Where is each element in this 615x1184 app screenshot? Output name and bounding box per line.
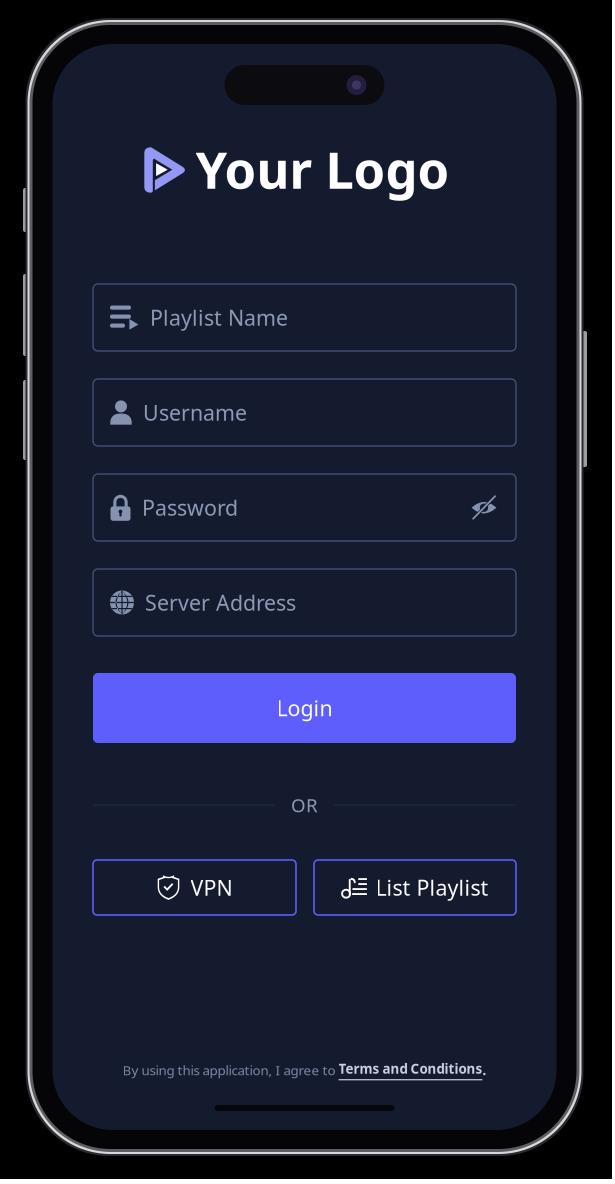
staticText: List Playlist	[375, 873, 488, 902]
staticText: Username	[143, 398, 247, 427]
button[interactable]: List Playlist	[314, 860, 516, 915]
staticText: VPN	[190, 873, 232, 902]
button[interactable]: Username	[93, 379, 516, 446]
staticText: Server Address	[145, 588, 296, 617]
staticText: Your Logo	[195, 135, 449, 203]
staticText: .	[482, 1061, 486, 1079]
button[interactable]: VPN	[93, 860, 296, 915]
button[interactable]: Playlist Name	[93, 284, 516, 351]
staticText: Playlist Name	[150, 303, 288, 332]
button[interactable]: Login	[93, 673, 516, 743]
button[interactable]: Password	[93, 474, 516, 541]
staticText: Password	[142, 493, 238, 522]
staticText: Terms and Conditions	[338, 1060, 482, 1077]
staticText: OR	[291, 793, 318, 817]
button[interactable]: Terms and Conditions	[338, 1060, 482, 1080]
staticText: By using this application, I agree to	[122, 1061, 338, 1079]
button[interactable]: Server Address	[93, 569, 516, 636]
staticText: Login	[276, 694, 332, 722]
